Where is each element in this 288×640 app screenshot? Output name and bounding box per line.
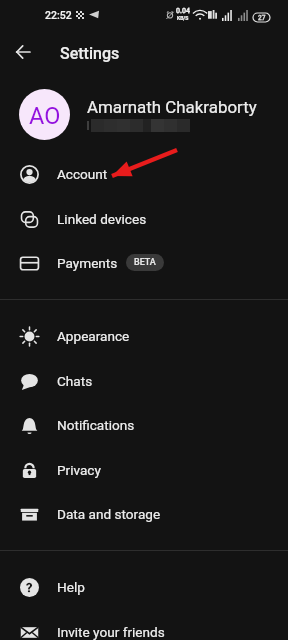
staticText: 22:52 [45,9,72,21]
button[interactable]: Privacy [0,447,288,492]
staticText: Notifications [57,417,135,433]
staticText: Account [57,166,108,182]
staticText: Settings [60,44,120,63]
staticText: Amarnath Chakraborty [87,97,257,117]
staticText: Chats [57,373,93,389]
button[interactable]: Chats [0,358,288,403]
staticText: 0.04 [176,7,190,15]
staticText: Linked devices [57,211,147,227]
staticText: Privacy [57,462,101,478]
staticText: KB/S [177,15,189,21]
button[interactable]: AO [0,88,288,140]
staticText: Data and storage [57,506,161,522]
staticText: 27 [258,14,266,22]
button[interactable]: Account [0,151,288,196]
button[interactable]: Payments [0,240,288,285]
button[interactable]: Notifications [0,402,288,447]
button[interactable]: Back [1,30,45,74]
button[interactable]: Data and storage [0,491,288,536]
staticText: Payments [57,255,118,271]
staticText: AO [29,102,61,130]
staticText: Appearance [57,328,130,344]
button[interactable]: ? [0,564,288,609]
button[interactable]: Invite your friends [0,609,288,640]
staticText: BETA [134,257,156,268]
staticText: Invite your friends [57,624,165,640]
staticText: Help [57,579,85,595]
staticText: ? [26,580,33,595]
button[interactable]: Linked devices [0,196,288,241]
button[interactable]: Appearance [0,313,288,358]
